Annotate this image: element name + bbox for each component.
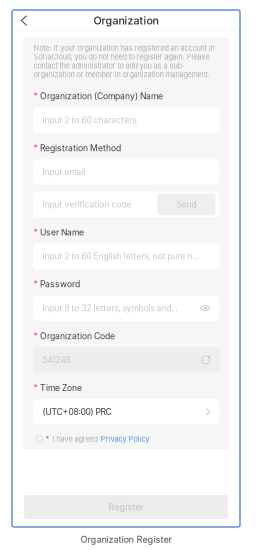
staticText: *: [33, 143, 37, 153]
button[interactable]: Refresh organization code: [201, 355, 210, 365]
staticText: Time Zone: [40, 383, 82, 393]
staticText: Input 2 to 60 characters: [42, 115, 136, 125]
staticText: *: [45, 434, 49, 443]
staticText: *: [33, 227, 37, 237]
button[interactable]: Send: [157, 194, 215, 215]
staticText: Send: [176, 199, 196, 210]
staticText: User Name: [40, 227, 84, 237]
button[interactable]: Agree to privacy policy: [36, 436, 42, 442]
staticText: Organization (Company) Name: [40, 91, 163, 101]
button[interactable]: Privacy Policy: [100, 434, 149, 443]
staticText: *: [33, 383, 37, 393]
staticText: Note: If your organization has registere…: [33, 44, 214, 79]
staticText: Registration Method: [40, 143, 121, 153]
button[interactable]: Back: [12, 10, 36, 31]
staticText: (UTC+08:00) PRC: [42, 407, 111, 417]
staticText: Input 2 to 60 English letters, not pure …: [42, 251, 198, 261]
staticText: Organization Code: [40, 331, 115, 341]
button[interactable]: Show password: [200, 304, 210, 312]
button[interactable]: Register: [24, 495, 228, 519]
staticText: *: [33, 91, 37, 101]
staticText: Organization: [93, 14, 158, 27]
staticText: Organization Register: [80, 534, 171, 545]
staticText: Input 8 to 32 letters, symbols and...: [42, 303, 177, 313]
staticText: *: [33, 331, 37, 341]
staticText: I have agreed: [52, 434, 97, 443]
staticText: Input email: [42, 167, 85, 177]
button[interactable]: (UTC+08:00) PRC: [33, 399, 219, 424]
staticText: Password: [40, 279, 80, 289]
staticText: Privacy Policy: [100, 434, 149, 443]
staticText: Input verification code: [42, 199, 131, 210]
staticText: Register: [108, 501, 143, 512]
staticText: 541248: [42, 355, 70, 365]
staticText: *: [33, 279, 37, 289]
